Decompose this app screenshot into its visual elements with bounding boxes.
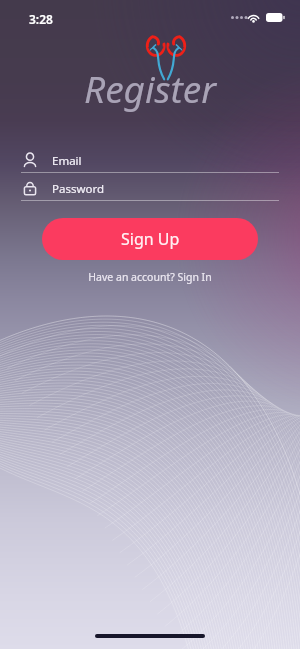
- button[interactable]: Have an account? Sign In: [0, 268, 300, 286]
- staticText: 3:28: [29, 11, 53, 27]
- button[interactable]: Email: [0, 147, 300, 174]
- staticText: Email: [52, 153, 82, 169]
- button[interactable]: Sign Up: [42, 218, 258, 260]
- staticText: Have an account? Sign In: [88, 270, 212, 284]
- staticText: Sign Up: [121, 228, 180, 250]
- button[interactable]: Password: [0, 175, 300, 202]
- staticText: Password: [52, 181, 105, 197]
- staticText: Register: [0, 63, 300, 113]
